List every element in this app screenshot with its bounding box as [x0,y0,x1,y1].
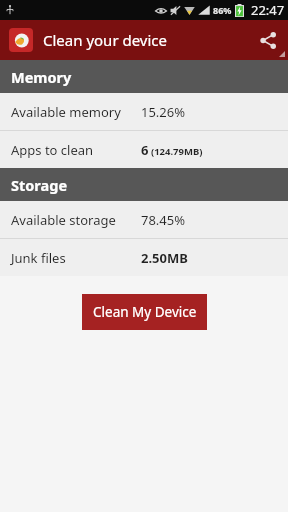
staticText: Memory [11,67,72,87]
staticText: 15.26% [141,103,186,121]
staticText: 78.45% [141,211,186,229]
staticText: Available storage [11,211,116,229]
staticText: 22:47 [251,1,285,19]
staticText: Storage [11,175,68,195]
button[interactable]: Available memory [0,93,288,130]
staticText: 6 (124.79MB) [141,141,203,159]
button[interactable]: Junk files [0,239,288,276]
staticText: Junk files [11,249,66,267]
staticText: Clean My Device [93,303,197,321]
staticText: 2.50MB [141,249,188,267]
button[interactable]: Available storage [0,201,288,238]
staticText: 86% [213,4,232,16]
staticText: Available memory [11,103,121,121]
button[interactable]: Share [248,20,288,60]
button[interactable]: Apps to clean [0,131,288,168]
button[interactable]: Clean My Device [82,294,207,330]
staticText: Clean your device [43,30,168,50]
staticText: Apps to clean [11,141,94,159]
